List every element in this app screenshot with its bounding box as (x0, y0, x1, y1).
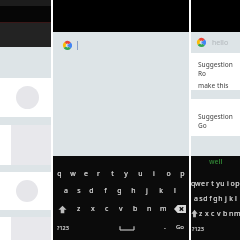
button[interactable]: x (204, 206, 210, 221)
button[interactable]: g (213, 191, 218, 206)
staticText: d (203, 194, 208, 204)
staticText: u (220, 179, 225, 189)
staticText: u (138, 169, 143, 179)
button[interactable] (0, 217, 51, 240)
button[interactable]: v (216, 206, 222, 221)
button[interactable]: o (161, 165, 175, 182)
button[interactable]: a (59, 182, 72, 200)
button[interactable]: z (198, 206, 204, 221)
staticText: h (131, 186, 136, 196)
staticText: Suggestion Ro (198, 60, 240, 78)
button[interactable]: e (79, 165, 92, 182)
button[interactable]: w (195, 176, 200, 191)
staticText: Suggestion Go (198, 112, 240, 130)
button[interactable]: i (147, 165, 161, 182)
button[interactable]: t (105, 165, 119, 182)
button[interactable]: a (193, 191, 198, 206)
button[interactable]: i (225, 176, 230, 191)
button[interactable] (0, 78, 51, 117)
button[interactable]: Shift (191, 206, 198, 221)
button[interactable]: q (191, 176, 195, 191)
staticText: g (213, 194, 218, 204)
button[interactable]: Space (114, 218, 140, 236)
button[interactable]: j (140, 182, 154, 200)
staticText: r (97, 169, 100, 179)
button[interactable]: w (66, 165, 79, 182)
staticText: m (160, 204, 167, 214)
button[interactable]: p (235, 176, 240, 191)
button[interactable]: r (92, 165, 105, 182)
staticText: r (206, 179, 209, 189)
button[interactable]: l (168, 182, 182, 200)
button[interactable]: z (72, 200, 86, 218)
button[interactable]: b (128, 200, 142, 218)
button[interactable]: l (233, 191, 238, 206)
button[interactable] (53, 32, 189, 58)
button[interactable]: b (222, 206, 228, 221)
button[interactable]: f (98, 182, 112, 200)
staticText: f (104, 186, 107, 196)
button[interactable]: c (100, 200, 114, 218)
staticText: w (70, 169, 76, 179)
button[interactable]: x (86, 200, 100, 218)
button[interactable] (0, 125, 51, 165)
button[interactable]: y (215, 176, 220, 191)
staticText: b (223, 209, 228, 219)
staticText: l (174, 186, 176, 196)
button[interactable]: e (200, 176, 205, 191)
button[interactable]: Suggestion Go (191, 99, 240, 136)
staticText: y (216, 179, 220, 189)
button[interactable]: q (53, 165, 66, 182)
button[interactable]: v (114, 200, 128, 218)
button[interactable]: u (133, 165, 147, 182)
staticText: ?123 (57, 224, 69, 231)
button[interactable]: p (175, 165, 189, 182)
staticText: o (166, 169, 171, 179)
button[interactable]: h (218, 191, 223, 206)
button[interactable]: j (223, 191, 228, 206)
staticText: v (119, 204, 123, 214)
staticText: s (77, 186, 81, 196)
staticText: c (105, 204, 109, 214)
button[interactable]: Shift (53, 200, 72, 218)
button[interactable]: c (210, 206, 216, 221)
button[interactable]: f (208, 191, 213, 206)
staticText: z (199, 209, 203, 219)
button[interactable]: m (234, 206, 240, 221)
button[interactable]: n (142, 200, 156, 218)
staticText: n (147, 204, 152, 214)
button[interactable]: ?123 (53, 218, 73, 236)
button[interactable]: Backspace (170, 200, 189, 218)
button[interactable]: Go (170, 218, 189, 236)
button[interactable]: u (220, 176, 225, 191)
button[interactable]: s (198, 191, 203, 206)
button[interactable]: hello (191, 32, 240, 53)
button[interactable]: k (228, 191, 233, 206)
button[interactable]: n (228, 206, 234, 221)
button[interactable] (0, 172, 51, 210)
button[interactable]: g (112, 182, 126, 200)
button[interactable]: . (159, 218, 170, 236)
staticText: ?123 (192, 225, 204, 232)
button[interactable]: d (203, 191, 208, 206)
staticText: x (205, 209, 209, 219)
staticText: Go (176, 223, 184, 231)
button[interactable]: t (210, 176, 215, 191)
button[interactable]: o (230, 176, 235, 191)
button[interactable]: m (156, 200, 170, 218)
staticText: t (111, 169, 114, 179)
staticText: h (218, 194, 223, 204)
button[interactable]: ?123 (191, 221, 205, 236)
button[interactable]: d (85, 182, 98, 200)
button[interactable]: Suggestion Ro (191, 53, 240, 90)
button[interactable]: r (205, 176, 210, 191)
button[interactable]: s (72, 182, 85, 200)
button[interactable]: h (126, 182, 140, 200)
button[interactable]: y (119, 165, 133, 182)
staticText: z (77, 204, 81, 214)
staticText: d (89, 186, 94, 196)
staticText: j (146, 186, 148, 196)
button[interactable]: k (154, 182, 168, 200)
staticText: k (159, 186, 163, 196)
staticText: t (211, 179, 214, 189)
